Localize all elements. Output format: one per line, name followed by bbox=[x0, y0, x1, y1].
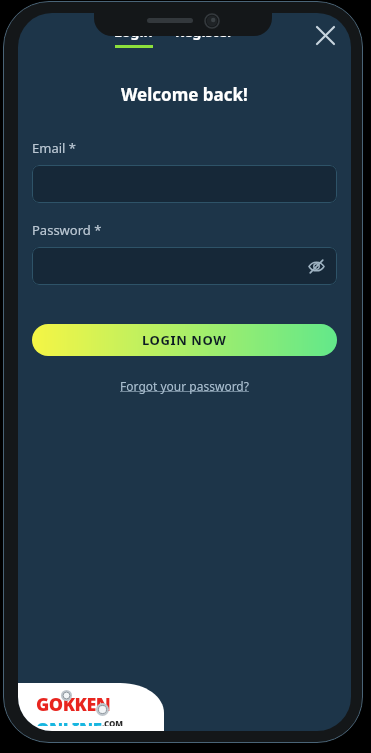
staticText: ONLINE bbox=[36, 718, 102, 726]
button[interactable]: Show password bbox=[32, 247, 337, 285]
staticText: GOKKEN bbox=[36, 692, 111, 717]
button[interactable]: Login bbox=[114, 22, 153, 48]
staticText: .COM bbox=[102, 718, 124, 726]
button[interactable]: Forgot your password? bbox=[114, 376, 255, 396]
button[interactable] bbox=[32, 165, 337, 203]
staticText: Login bbox=[114, 22, 153, 41]
button[interactable]: Register bbox=[175, 22, 234, 48]
staticText: LOGIN NOW bbox=[142, 331, 227, 349]
staticText: Email * bbox=[32, 139, 76, 157]
staticText: Welcome back! bbox=[121, 83, 248, 106]
button[interactable]: Close bbox=[307, 17, 343, 53]
staticText: Password * bbox=[32, 221, 102, 239]
button[interactable]: LOGIN NOW bbox=[32, 324, 337, 356]
staticText: Forgot your password? bbox=[120, 378, 249, 394]
staticText: Register bbox=[175, 22, 234, 41]
button[interactable]: Show password bbox=[301, 251, 331, 281]
